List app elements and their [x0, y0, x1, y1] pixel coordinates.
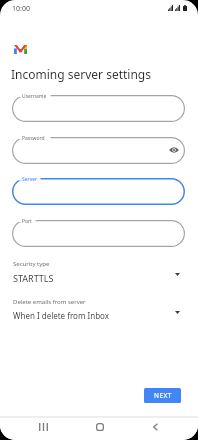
staticText: Server	[22, 176, 38, 183]
button[interactable]: Back	[138, 417, 170, 440]
button[interactable]: Username	[0, 90, 198, 122]
staticText: Delete emails from server	[13, 298, 86, 306]
staticText: Username	[22, 93, 47, 100]
staticText: Password	[22, 135, 45, 142]
button[interactable]: Recent apps	[28, 417, 60, 440]
button[interactable]: Security type	[0, 259, 198, 285]
staticText: STARTTLS	[13, 272, 54, 284]
staticText: 10:00	[12, 4, 30, 14]
staticText: Incoming server settings	[11, 66, 151, 82]
button[interactable]: Password	[0, 132, 198, 164]
button[interactable]: Delete emails from server	[0, 297, 198, 323]
button[interactable]: Server	[0, 173, 198, 205]
button[interactable]: NEXT	[144, 388, 181, 403]
staticText: Port	[22, 218, 32, 225]
button[interactable]: Home	[83, 417, 115, 440]
button[interactable]: Port	[0, 215, 198, 247]
staticText: When I delete from Inbox	[13, 310, 109, 321]
staticText: Security type	[13, 260, 50, 268]
staticText: NEXT	[154, 391, 172, 400]
